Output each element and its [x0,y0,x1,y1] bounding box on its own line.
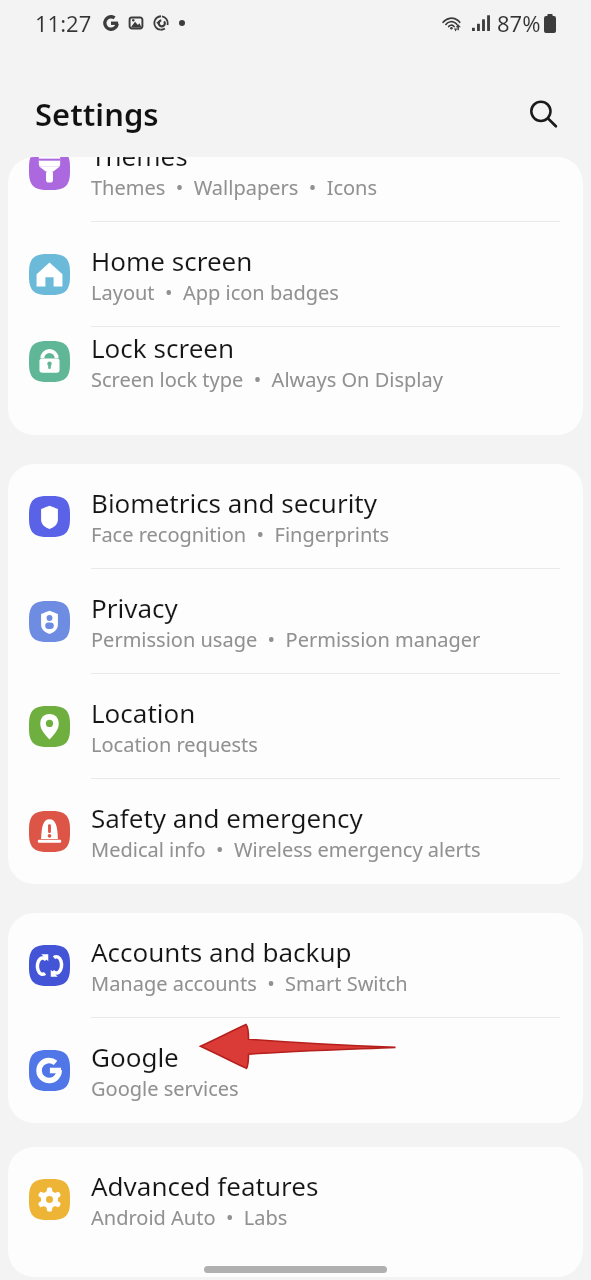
button[interactable]: Search [519,90,567,138]
button[interactable]: Accounts and backup [8,913,583,1018]
button[interactable]: Google [8,1018,583,1123]
button[interactable]: Biometrics and security [8,464,583,569]
staticText: Google services [91,1075,239,1102]
staticText: 87% [497,8,541,38]
staticText: Themes • Wallpapers • Icons [91,174,378,201]
staticText: Android Auto • Labs [91,1204,288,1231]
staticText: 11:27 [35,8,92,38]
staticText: Layout • App icon badges [91,279,339,306]
staticText: Google [91,1039,179,1074]
button[interactable]: Advanced features [8,1147,583,1252]
button[interactable]: Home screen [8,222,583,327]
staticText: Manage accounts • Smart Switch [91,970,408,997]
staticText: Biometrics and security [91,485,378,520]
staticText: Permission usage • Permission manager [91,626,481,653]
staticText: Screen lock type • Always On Display [91,366,443,393]
staticText: Themes [91,157,188,173]
staticText: Medical info • Wireless emergency alerts [91,836,481,863]
staticText: Home screen [91,243,253,278]
button[interactable]: Privacy [8,569,583,674]
staticText: Settings [35,93,159,135]
button[interactable]: Lock screen [8,327,583,395]
staticText: Location [91,695,196,730]
staticText: Accounts and backup [91,934,352,969]
staticText: Lock screen [91,330,235,365]
staticText: Advanced features [91,1168,319,1203]
button[interactable]: Safety and emergency [8,779,583,884]
button[interactable]: Themes [8,157,583,222]
staticText: Safety and emergency [91,800,363,835]
staticText: Privacy [91,590,178,625]
staticText: Location requests [91,731,258,758]
staticText: Face recognition • Fingerprints [91,521,390,548]
button[interactable]: Location [8,674,583,779]
